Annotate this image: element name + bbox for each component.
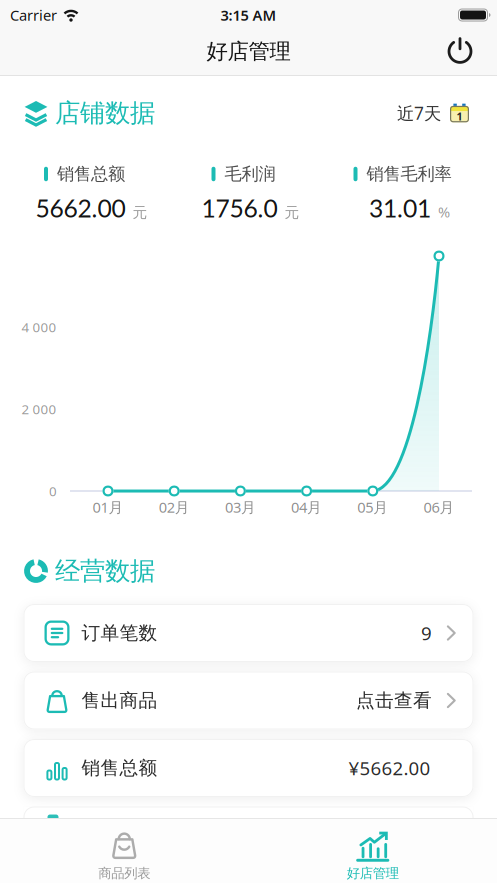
staticText: 5662.00 (35, 193, 125, 223)
staticText: 06月 (423, 497, 454, 517)
staticText: 订单笔数 (81, 621, 157, 644)
button[interactable]: 退出登录 (435, 39, 497, 65)
staticText: 元 (132, 204, 147, 222)
staticText: ¥5662.00 (348, 756, 430, 780)
staticText: 3:15 AM (220, 5, 276, 25)
staticText: 经营数据 (55, 555, 155, 586)
staticText: 毛利润 (224, 163, 275, 185)
staticText: 9 (421, 621, 432, 645)
staticText: Carrier (10, 5, 57, 25)
staticText: 好店管理 (206, 38, 290, 65)
staticText: 1 (456, 109, 462, 123)
button[interactable]: 好店管理 (248, 819, 497, 883)
staticText: 点击查看 (356, 689, 432, 712)
staticText: 销售毛利率 (366, 163, 451, 185)
staticText: 近7天 (397, 101, 441, 124)
staticText: 05月 (357, 497, 388, 517)
staticText: 售出商品 (81, 689, 157, 712)
staticText: 好店管理 (347, 865, 399, 881)
staticText: 销售总额 (81, 756, 157, 779)
button[interactable]: 售出商品 (23, 671, 473, 729)
staticText: 04月 (291, 497, 322, 517)
button[interactable]: 近7天 (397, 101, 469, 124)
staticText: 销售总额 (57, 163, 125, 185)
staticText: 02月 (159, 497, 190, 517)
staticText: 0 (49, 482, 57, 500)
staticText: 03月 (225, 497, 256, 517)
button[interactable]: 销售总额 (23, 739, 473, 797)
staticText: % (438, 202, 450, 222)
staticText: 元 (284, 204, 299, 222)
staticText: 2 000 (21, 400, 56, 418)
staticText: 商品列表 (98, 865, 150, 881)
button[interactable]: 订单笔数 (23, 604, 473, 662)
staticText: 01月 (92, 497, 123, 517)
staticText: 31.01 (369, 193, 431, 223)
button[interactable]: 商品列表 (0, 819, 248, 883)
staticText: 1756.0 (201, 193, 277, 223)
staticText: 店铺数据 (55, 97, 155, 128)
staticText: 4 000 (21, 318, 56, 336)
